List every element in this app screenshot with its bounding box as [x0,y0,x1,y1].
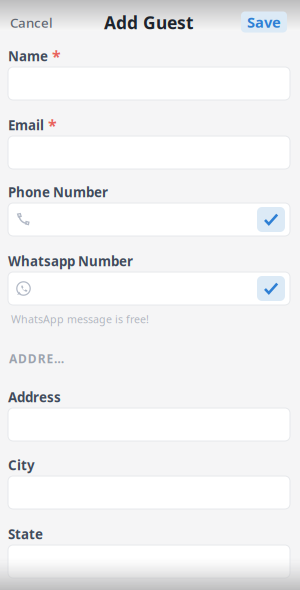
staticText: State [8,525,43,543]
staticText: * [48,45,61,67]
staticText: Name [8,47,48,65]
staticText: Cancel [10,14,53,31]
button[interactable]: Cancel [10,10,66,34]
button[interactable]: Save [241,11,287,32]
staticText: Phone Number [8,183,108,201]
staticText: WhatsApp message is free! [11,312,149,326]
staticText: Save [247,12,281,32]
button[interactable]: Verified [257,276,285,301]
staticText: Add Guest [104,11,194,34]
staticText: City [8,456,35,474]
staticText: Whatsapp Number [8,252,133,270]
button[interactable]: Verified [257,207,285,232]
staticText: * [44,114,57,136]
staticText: ADDRESS [9,350,69,366]
staticText: Email [8,116,44,134]
staticText: Address [8,388,61,406]
